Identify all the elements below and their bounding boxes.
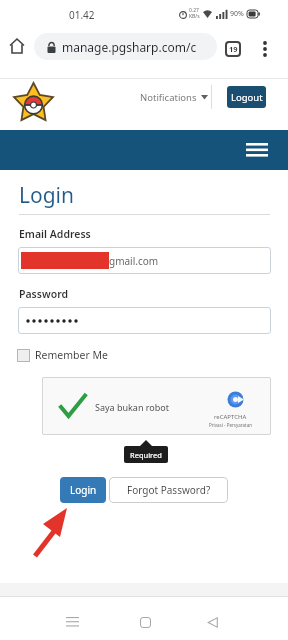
button[interactable] [12,82,56,124]
staticText: Remember Me [35,348,108,362]
staticText: Password [19,287,69,301]
button[interactable]: manage.pgsharp.com/c [34,33,217,60]
button[interactable] [66,617,79,627]
staticText: Login [19,181,75,210]
staticText: Privasi - Persyaratan [209,422,252,428]
button[interactable] [18,307,271,334]
staticText: Saya bukan robot [95,401,170,413]
staticText: Email Address [19,227,91,241]
staticText: Login [70,483,97,497]
button[interactable]: 19 [225,41,241,57]
button[interactable]: Remember Me [17,348,108,362]
button[interactable] [207,617,218,628]
button[interactable]: Saya bukan robot [42,377,271,435]
staticText: reCAPTCHA [214,413,247,421]
button[interactable]: Forgot Password? [109,477,228,503]
staticText: 90% [230,9,244,19]
staticText: 19 [229,44,238,54]
staticText: Notifications [140,91,197,104]
staticText: 0.27 [189,7,199,14]
button[interactable] [262,41,268,57]
button[interactable]: Logout [227,86,266,108]
staticText: Required [130,450,162,460]
staticText: 01.42 [69,8,95,22]
button[interactable]: gmail.com [18,247,271,274]
staticText: gmail.com [109,254,159,268]
staticText: Logout [231,91,263,104]
staticText: manage.pgsharp.com/c [62,39,197,55]
staticText: KB/s [189,13,200,20]
button[interactable]: Notifications [140,88,208,106]
button[interactable] [246,143,268,157]
button[interactable] [9,38,25,54]
button[interactable] [140,617,151,628]
button[interactable]: Login [60,477,106,503]
staticText: Forgot Password? [127,483,211,497]
